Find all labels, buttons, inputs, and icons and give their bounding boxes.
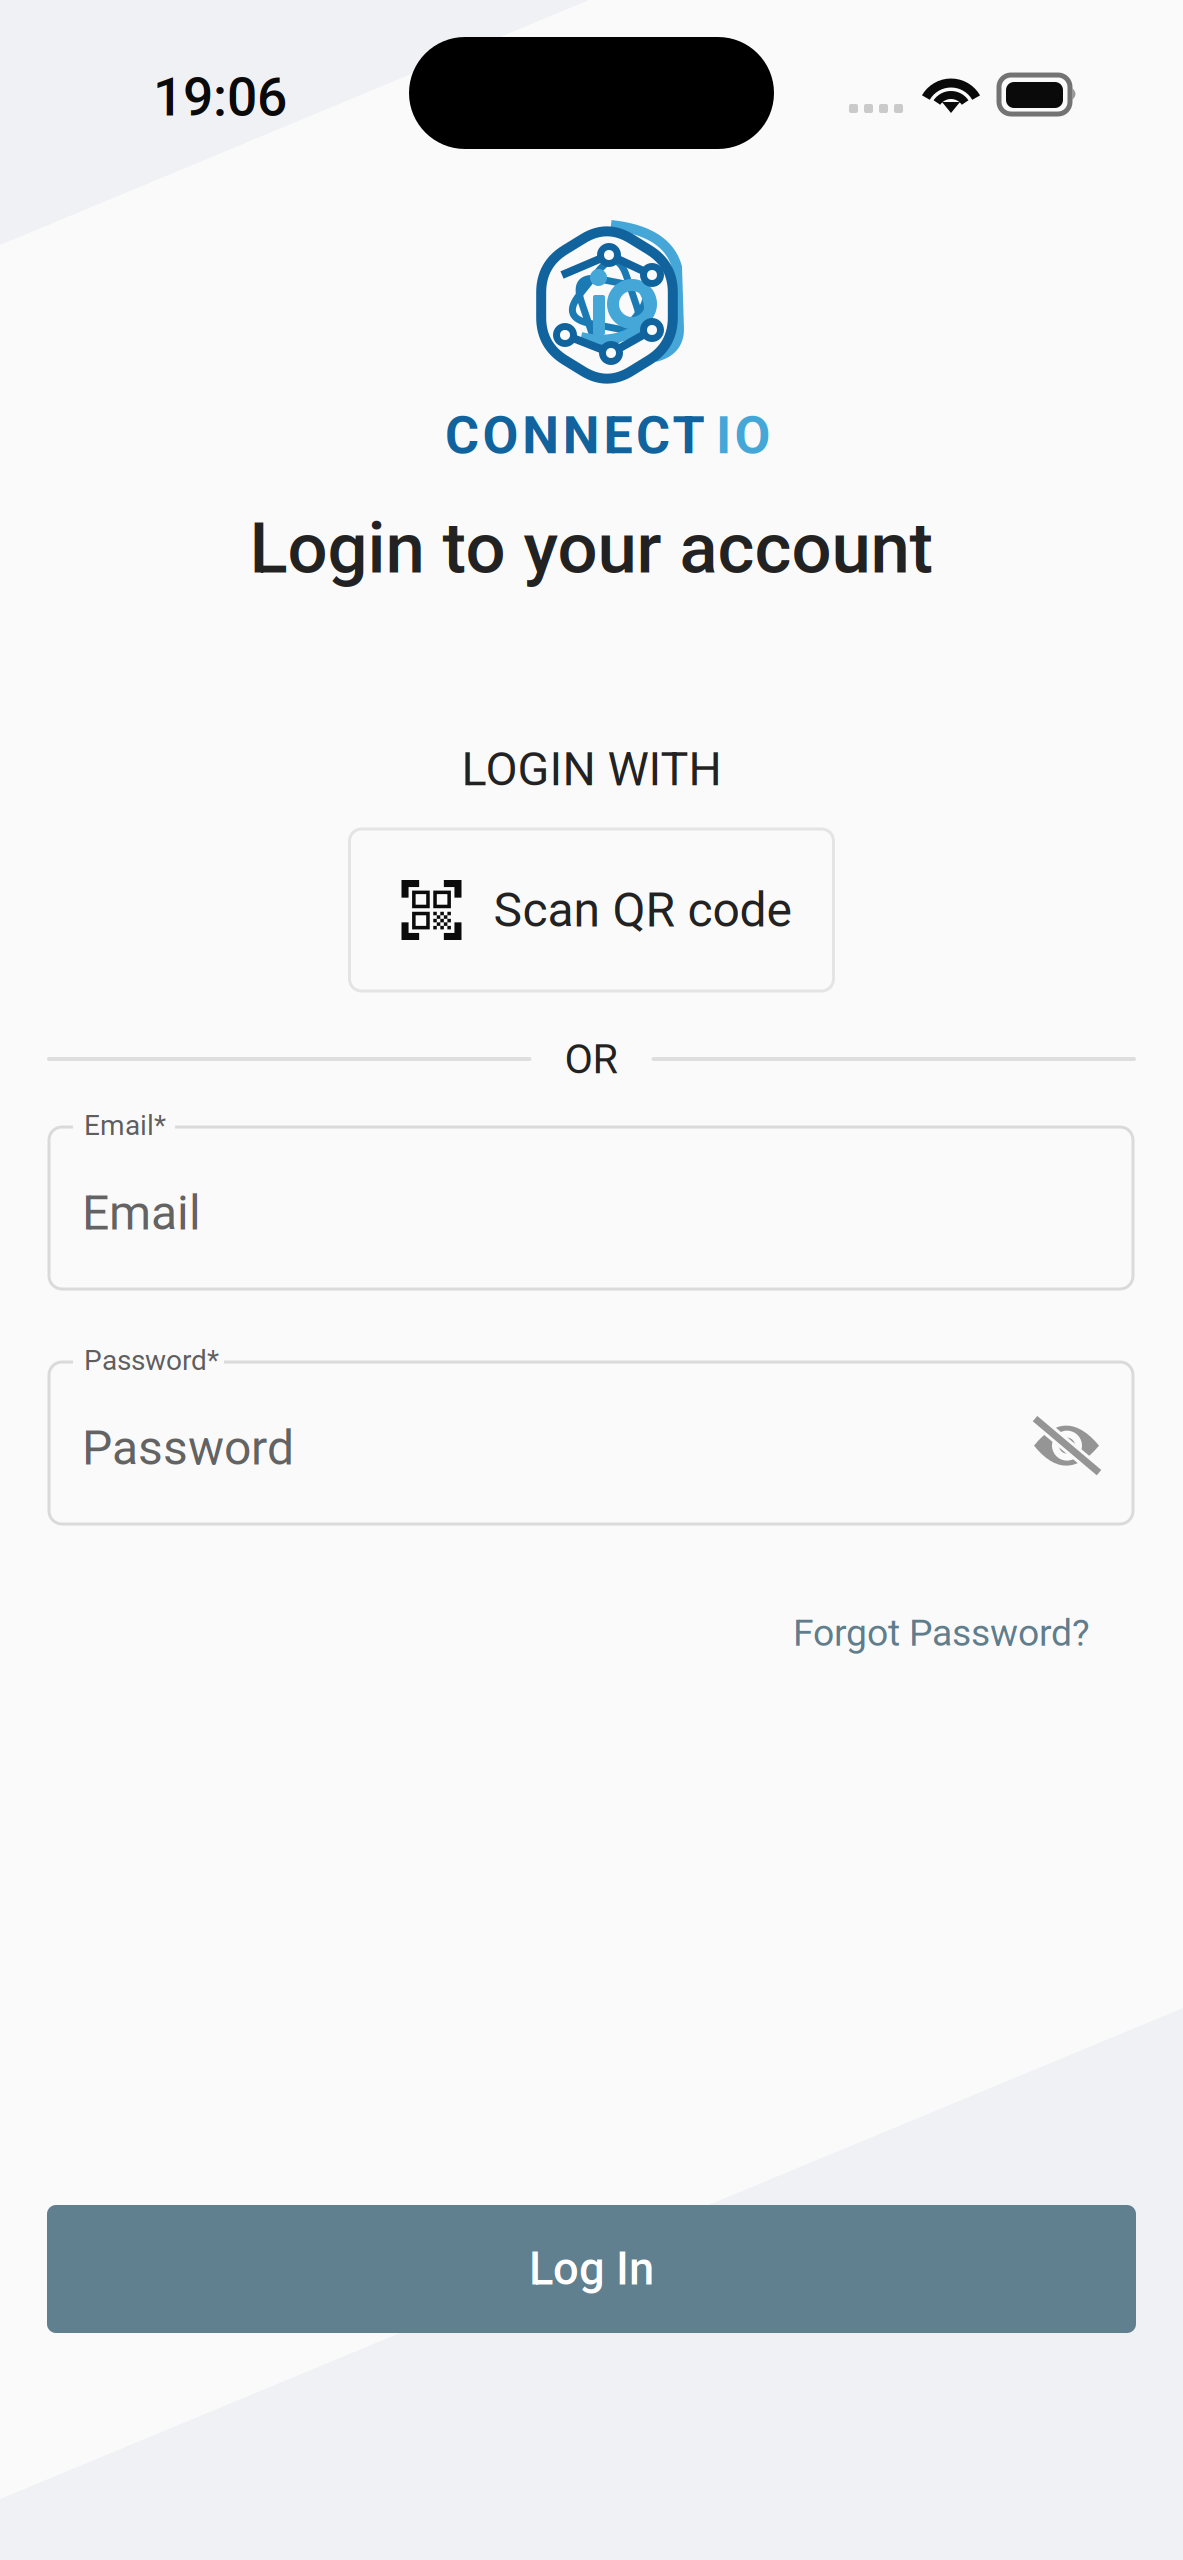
staticText: IO — [716, 405, 771, 466]
staticText: OR — [564, 1035, 617, 1083]
button[interactable]: Log In — [47, 2205, 1136, 2333]
button[interactable]: Show password — [1033, 1418, 1100, 1474]
staticText: Login to your account — [249, 507, 933, 590]
staticText: Email* — [84, 1109, 166, 1142]
staticText: Password — [82, 1420, 294, 1476]
staticText: Email — [82, 1185, 201, 1241]
staticText: Log In — [529, 2242, 654, 2295]
staticText: Password* — [84, 1344, 219, 1377]
staticText: Forgot Password? — [793, 1611, 1090, 1655]
staticText: Scan QR code — [493, 882, 791, 938]
staticText: LOGIN WITH — [461, 742, 721, 797]
staticText: 19:06 — [153, 66, 287, 128]
staticText: CONNECT — [445, 405, 705, 466]
button[interactable]: Forgot Password? — [793, 1611, 1090, 1655]
button[interactable]: Scan QR code — [349, 829, 833, 991]
